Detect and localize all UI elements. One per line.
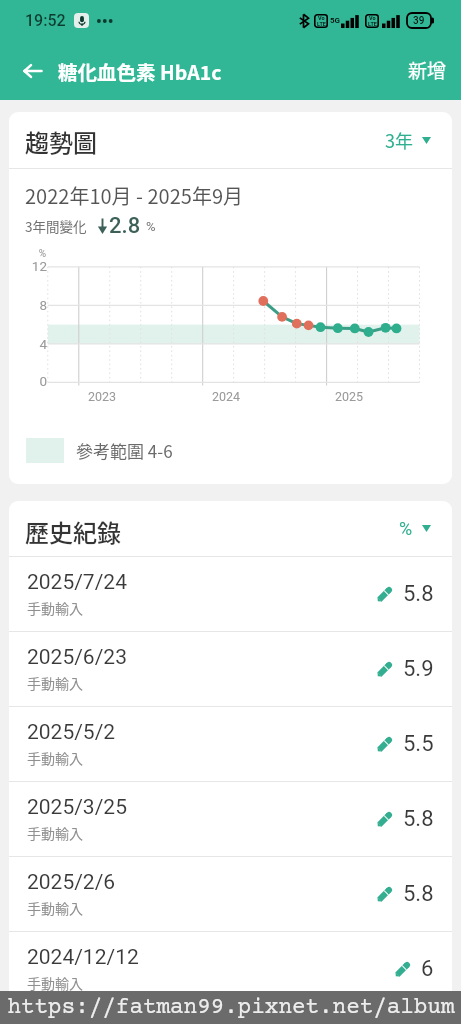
staticText: 2.8	[109, 213, 141, 239]
staticText: https://fatman99.pixnet.net/album	[7, 995, 455, 1020]
staticText: 3年間變化	[25, 216, 87, 236]
button[interactable]: 2025/6/23	[9, 632, 452, 706]
staticText: 6	[421, 956, 434, 982]
staticText: %	[399, 518, 413, 539]
staticText: 39	[413, 15, 425, 27]
staticText: LTE	[368, 21, 377, 27]
staticText: 2025/6/23	[27, 645, 127, 670]
button[interactable]: 2025/2/6	[9, 857, 452, 931]
staticText: 新增	[408, 56, 447, 84]
staticText: 2024	[212, 389, 241, 404]
staticText: 12	[9, 258, 47, 274]
staticText: 手動輸入	[27, 598, 83, 618]
staticText: 2023	[88, 389, 117, 404]
staticText: 手動輸入	[27, 898, 83, 918]
staticText: Vo	[318, 15, 325, 21]
button[interactable]: 2025/3/25	[9, 782, 452, 856]
staticText: 2022年10月 - 2025年9月	[25, 181, 243, 210]
staticText: 19:52	[25, 11, 66, 30]
staticText: 手動輸入	[27, 823, 83, 843]
staticText: Vo	[369, 15, 376, 21]
staticText: %	[146, 219, 156, 234]
staticText: 8	[9, 297, 47, 313]
staticText: 5.8	[403, 581, 434, 607]
button[interactable]: 2024/12/12	[9, 932, 452, 1006]
staticText: 0	[9, 373, 47, 389]
staticText: %	[9, 248, 46, 260]
staticText: 手動輸入	[27, 673, 83, 693]
button[interactable]: 3年	[372, 117, 452, 163]
staticText: 3年	[385, 127, 413, 153]
staticText: 2025	[335, 389, 364, 404]
button[interactable]: 新增	[394, 46, 461, 94]
staticText: LTE	[317, 21, 326, 27]
staticText: 5.5	[403, 731, 434, 757]
staticText: 5.8	[403, 881, 434, 907]
staticText: 2025/5/2	[27, 720, 116, 745]
staticText: 2025/7/24	[27, 570, 127, 595]
button[interactable]: 2025/7/24	[9, 557, 452, 631]
staticText: 參考範圍 4-6	[76, 438, 173, 463]
staticText: 歷史紀錄	[25, 514, 121, 549]
button[interactable]: 2025/5/2	[9, 707, 452, 781]
button[interactable]: Back	[12, 50, 53, 91]
staticText: 2025/3/25	[27, 795, 127, 820]
staticText: 2025/2/6	[27, 870, 116, 895]
staticText: 2024/12/12	[27, 945, 139, 970]
staticText: 手動輸入	[27, 973, 83, 993]
staticText: 趨勢圖	[25, 124, 97, 159]
staticText: 5G	[330, 16, 341, 25]
staticText: 5.9	[403, 656, 434, 682]
staticText: 5.8	[403, 806, 434, 832]
staticText: 糖化血色素 HbA1c	[58, 57, 222, 85]
button[interactable]: %	[386, 508, 452, 549]
staticText: 手動輸入	[27, 748, 83, 768]
staticText: 4	[9, 336, 47, 352]
